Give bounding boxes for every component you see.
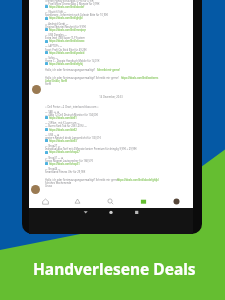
- staticText: Original Netzteil Neuheit für 9,99€: [45, 25, 86, 28]
- staticText: https://deals.com/link/ghijkl: [49, 16, 83, 19]
- staticText: https://deals.com/link/weiteres: [121, 76, 159, 79]
- staticText: 14 Dezember, 20:33: [29, 95, 193, 98]
- staticText: Steffi: [45, 82, 52, 85]
- staticText: Hallo, ich oder Serienausgangsverwaltigt…: [45, 178, 119, 181]
- staticText: Home C - Doppio Handtuch Mobile für 14,0…: [45, 59, 100, 62]
- staticText: — LAPTOPs —: [45, 44, 63, 47]
- staticText: https://deals.com/link/mnopqr: [49, 28, 86, 31]
- button[interactable]: Search: [94, 195, 127, 208]
- staticText: Schönes Wochenende: [45, 181, 72, 184]
- staticText: Hallo, ich oder Serienausgangsverwaltigt…: [45, 68, 96, 71]
- staticText: — Sofas —: [45, 56, 58, 59]
- button[interactable]: Home: [29, 195, 61, 208]
- staticText: Sonos Magnet Lautsprecher für 168,57€: [45, 159, 93, 162]
- button[interactable]: Deals: [127, 195, 160, 208]
- staticText: — Shop27 —: [45, 144, 61, 147]
- staticText: Liebe Grüße, Steffi: [45, 79, 68, 82]
- staticText: — USB Dongles —: [45, 33, 67, 36]
- staticText: Extra Intel USB Super TLP System: [45, 36, 85, 39]
- staticText: — USB — ⊞: [45, 133, 60, 136]
- staticText: — Android Gerät —: [45, 22, 69, 25]
- staticText: https://deals.com/dell3: [49, 139, 77, 142]
- staticText: Individual Abo Tarif mit 4 Monate bester…: [45, 147, 137, 150]
- staticText: — Pixel Mikro Cheese Abo 2 Monate für 0,…: [45, 2, 100, 5]
- staticText: https://deals.com/link/stuvwx: [49, 39, 85, 42]
- staticText: https://deals.com/link/abcdefghijkl: [117, 178, 159, 181]
- staticText: — 448g 12 Dell Deutsch Monitor für 104,0…: [45, 113, 98, 116]
- staticText: https://deals.com/link/efghij: [49, 62, 83, 65]
- button[interactable]: Profile: [160, 195, 193, 208]
- staticText: Sport Profi Op Stick Elite für 49,25€: [45, 48, 87, 51]
- staticText: https://deals.com/link/abcdef: [49, 5, 85, 8]
- staticText: Smartband Fitness Uhr für 29,90€: [45, 170, 86, 173]
- staticText: Hallo, ich oder Serienausgangsverwaltigt…: [45, 76, 119, 79]
- staticText: https://deals.com/shop31: [49, 162, 80, 165]
- button[interactable]: Notifications: [61, 195, 94, 208]
- staticText: Telefon Handy Schutzglas X Pro für 4,99€: [45, 0, 94, 2]
- staticText: — 2 Wlan , mit X Lover um —: [45, 121, 80, 124]
- staticText: — Vikuiti 6 Stift —: [45, 10, 67, 13]
- staticText: Handverlesene Deals: [33, 258, 196, 279]
- staticText: — Buero funk Tab für 238 (-20%) —: [45, 124, 87, 127]
- staticText: — TAB ++ ⊞: [45, 110, 60, 113]
- staticText: Schreibt mir gerne!: [97, 68, 120, 71]
- staticText: gestern Netzteil deckt Lampenlicht für 1…: [45, 136, 101, 139]
- staticText: https://deals.com/dell2: [49, 128, 77, 131]
- staticText: ⚡ Dell Preise: +2 Chart_interlaced tbox.…: [45, 105, 99, 108]
- staticText: Gruss: [45, 184, 52, 187]
- staticText: — Shop44 —: [45, 167, 61, 170]
- staticText: https://deals.com/link/yzabcd: [49, 51, 85, 54]
- staticText: — Shop31 — ⊞: [45, 156, 64, 159]
- staticText: https://deals.com/shop27: [49, 150, 80, 153]
- staticText: https://deals.com/dell1: [49, 116, 77, 119]
- staticText: Spiekbranx - Informiert euch Coleate Bit…: [45, 13, 109, 16]
